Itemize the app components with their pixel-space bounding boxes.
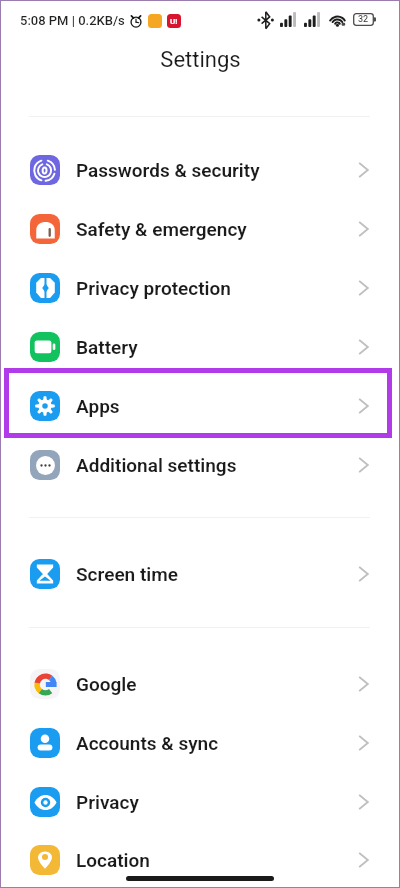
button[interactable]: Safety & emergency bbox=[0, 199, 400, 258]
staticText: Safety & emergency bbox=[76, 218, 247, 240]
button[interactable]: Additional settings bbox=[0, 435, 400, 494]
staticText: U! bbox=[170, 17, 178, 26]
staticText: Settings bbox=[160, 47, 241, 73]
button[interactable]: Battery bbox=[0, 317, 400, 376]
button[interactable]: Location bbox=[0, 831, 400, 888]
staticText: Screen time bbox=[76, 563, 178, 585]
button[interactable]: Passwords & security bbox=[0, 140, 400, 199]
staticText: 32 bbox=[358, 14, 369, 25]
staticText: Passwords & security bbox=[76, 159, 260, 181]
button[interactable]: Privacy bbox=[0, 772, 400, 831]
staticText: Apps bbox=[76, 395, 120, 417]
staticText: 5:08 PM | 0.2KB/s bbox=[20, 13, 125, 28]
staticText: Location bbox=[76, 849, 150, 871]
staticText: Battery bbox=[76, 336, 138, 358]
button[interactable]: Accounts & sync bbox=[0, 713, 400, 772]
button[interactable]: Privacy protection bbox=[0, 258, 400, 317]
button[interactable]: Screen time bbox=[0, 544, 400, 603]
staticText: Privacy bbox=[76, 791, 139, 813]
staticText: Accounts & sync bbox=[76, 732, 219, 754]
button[interactable]: Apps bbox=[0, 376, 400, 435]
staticText: Google bbox=[76, 673, 137, 695]
staticText: Privacy protection bbox=[76, 277, 231, 299]
staticText: Additional settings bbox=[76, 454, 237, 476]
button[interactable]: Google bbox=[0, 654, 400, 713]
